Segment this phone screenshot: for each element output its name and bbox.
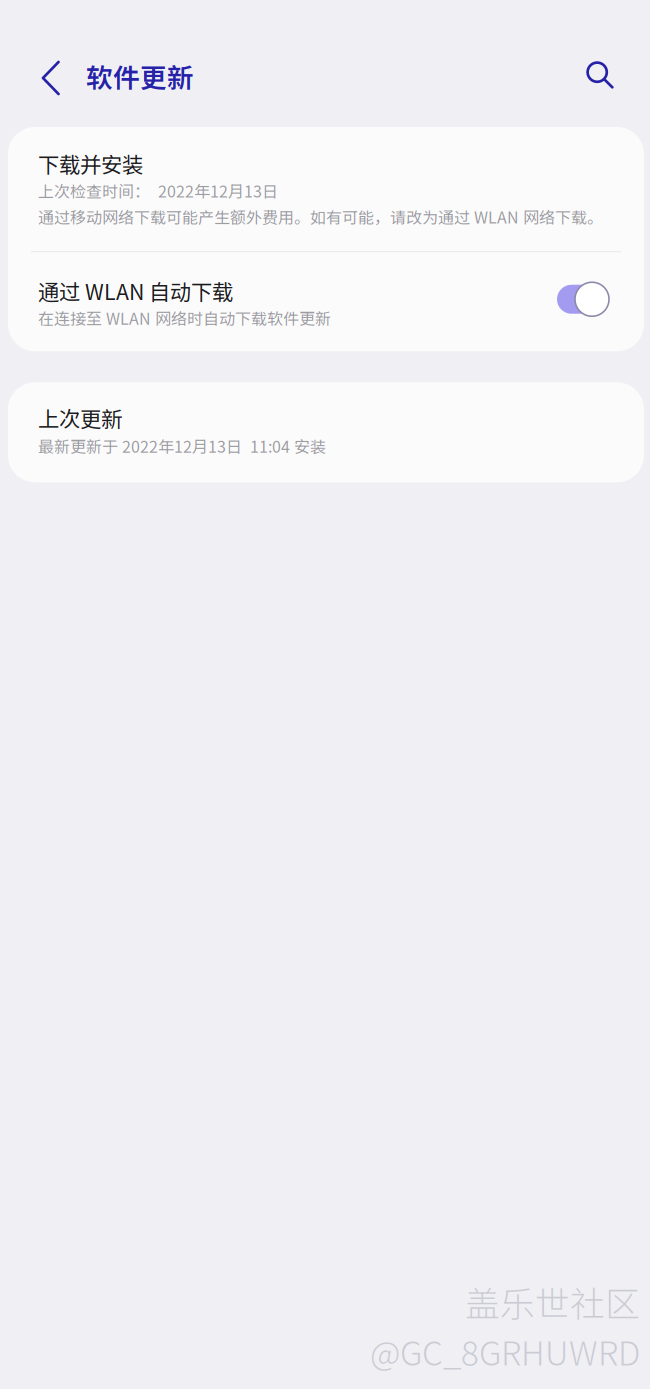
staticText: 上次检查时间： 2022年12月13日 <box>38 179 278 202</box>
button[interactable]: 软件更新 <box>74 59 194 97</box>
staticText: 上次更新 <box>38 402 122 433</box>
staticText: @GC_8GRHUWRD <box>370 1327 640 1375</box>
staticText: 在连接至 WLAN 网络时自动下载软件更新 <box>38 306 331 329</box>
button[interactable]: Back <box>32 50 74 106</box>
staticText: 通过移动网络下载可能产生额外费用。如有可能，请改为通过 WLAN 网络下载。 <box>38 205 603 228</box>
button[interactable]: 通过 WLAN 自动下载 <box>8 252 644 351</box>
button[interactable]: 上次更新 <box>8 382 644 482</box>
staticText: 下载并安装 <box>38 148 143 179</box>
button[interactable]: 下载并安装 <box>8 127 644 251</box>
staticText: 最新更新于 2022年12月13日 11:04 安装 <box>38 434 326 457</box>
button[interactable]: Search <box>576 50 628 106</box>
staticText: 通过 WLAN 自动下载 <box>38 275 233 306</box>
staticText: 软件更新 <box>86 57 194 95</box>
staticText: 盖乐世社区 <box>465 1276 640 1327</box>
